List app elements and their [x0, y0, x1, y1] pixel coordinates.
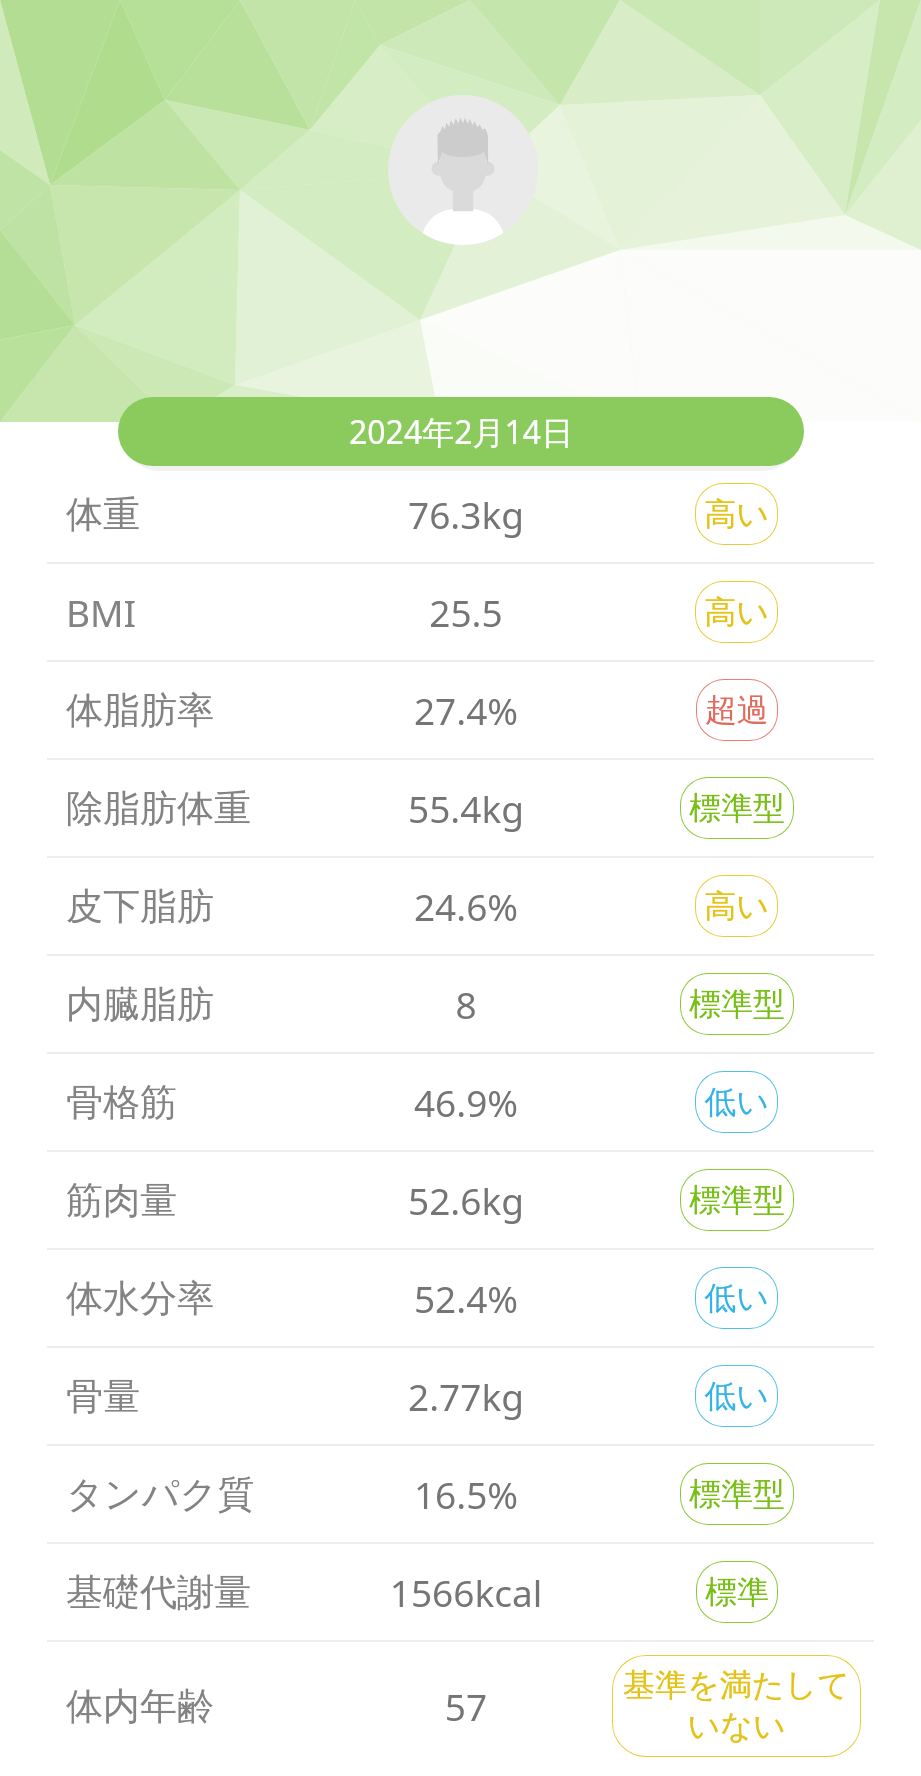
staticText: 低い — [704, 1278, 769, 1318]
button[interactable]: 基礎代謝量 — [0, 1544, 921, 1640]
button[interactable]: 高い — [695, 875, 778, 937]
staticText: 55.4kg — [336, 783, 596, 833]
staticText: 76.3kg — [336, 489, 596, 539]
button[interactable]: 体水分率 — [0, 1250, 921, 1346]
button[interactable]: 内臓脂肪 — [0, 956, 921, 1052]
button[interactable]: 低い — [695, 1071, 778, 1133]
button[interactable]: 標準型 — [680, 973, 794, 1035]
button[interactable]: Profile photo — [388, 95, 538, 245]
button[interactable]: 標準型 — [680, 1463, 794, 1525]
staticText: 標準型 — [689, 788, 785, 828]
staticText: 52.6kg — [336, 1175, 596, 1225]
button[interactable]: 骨量 — [0, 1348, 921, 1444]
staticText: 体脂肪率 — [66, 687, 336, 734]
staticText: 除脂肪体重 — [66, 785, 336, 832]
button[interactable]: 筋肉量 — [0, 1152, 921, 1248]
button[interactable]: 基準を満たして いない — [612, 1655, 861, 1757]
staticText: 体水分率 — [66, 1275, 336, 1322]
button[interactable]: 体内年齢 — [0, 1642, 921, 1770]
staticText: 骨格筋 — [66, 1079, 336, 1126]
staticText: 標準型 — [689, 1180, 785, 1220]
staticText: 2024年2月14日 — [349, 410, 574, 454]
button[interactable]: 皮下脂肪 — [0, 858, 921, 954]
staticText: 25.5 — [336, 587, 596, 637]
button[interactable]: 標準型 — [680, 1169, 794, 1231]
button[interactable]: 高い — [695, 483, 778, 545]
staticText: 高い — [704, 592, 769, 632]
staticText: 超過 — [705, 690, 769, 730]
button[interactable]: 超過 — [696, 679, 778, 741]
button[interactable]: 高い — [695, 581, 778, 643]
staticText: タンパク質 — [66, 1471, 336, 1518]
staticText: 基礎代謝量 — [66, 1569, 336, 1616]
staticText: 標準型 — [689, 984, 785, 1024]
staticText: 2.77kg — [336, 1371, 596, 1421]
staticText: 46.9% — [336, 1077, 596, 1127]
staticText: 標準型 — [689, 1474, 785, 1514]
staticText: 基準を満たして いない — [623, 1665, 850, 1747]
staticText: 16.5% — [336, 1469, 596, 1519]
button[interactable]: 体重 — [0, 466, 921, 562]
button[interactable]: 体脂肪率 — [0, 662, 921, 758]
staticText: 標準 — [705, 1572, 769, 1612]
button[interactable]: 標準型 — [680, 777, 794, 839]
button[interactable]: 低い — [695, 1267, 778, 1329]
staticText: 皮下脂肪 — [66, 883, 336, 930]
staticText: 低い — [704, 1376, 769, 1416]
staticText: 27.4% — [336, 685, 596, 735]
staticText: 52.4% — [336, 1273, 596, 1323]
staticText: 体重 — [66, 491, 336, 538]
button[interactable]: 2024年2月14日 — [118, 397, 804, 466]
button[interactable]: BMI — [0, 564, 921, 660]
staticText: 筋肉量 — [66, 1177, 336, 1224]
staticText: 骨量 — [66, 1373, 336, 1420]
button[interactable]: 除脂肪体重 — [0, 760, 921, 856]
staticText: 24.6% — [336, 881, 596, 931]
staticText: 57 — [336, 1681, 596, 1731]
staticText: 高い — [704, 494, 769, 534]
staticText: 体内年齢 — [66, 1683, 336, 1730]
staticText: 内臓脂肪 — [66, 981, 336, 1028]
staticText: 8 — [336, 979, 596, 1029]
staticText: 高い — [704, 886, 769, 926]
button[interactable]: タンパク質 — [0, 1446, 921, 1542]
button[interactable]: 低い — [695, 1365, 778, 1427]
button[interactable]: 標準 — [696, 1561, 778, 1623]
button[interactable]: 骨格筋 — [0, 1054, 921, 1150]
staticText: BMI — [66, 587, 336, 637]
staticText: 低い — [704, 1082, 769, 1122]
staticText: 1566kcal — [336, 1567, 596, 1617]
